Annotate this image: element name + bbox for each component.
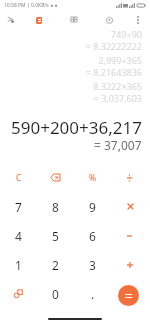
staticText: 1 [15,257,22,273]
button[interactable]: 3 [74,250,111,279]
button[interactable]: 2 [37,250,74,279]
button[interactable]: C [0,163,37,192]
button[interactable]: Scientific mode [1,10,19,28]
button[interactable]: History [30,11,48,29]
staticText: 8.3222×365 [93,80,142,92]
staticText: = 8.21643836 [85,66,142,78]
button[interactable]: 7 [0,192,37,221]
button[interactable]: 6 [74,221,111,250]
button[interactable]: Multiply [111,192,148,221]
staticText: 0 [52,286,59,302]
staticText: = 3,037.603 [93,92,142,104]
staticText: 9 [89,199,96,215]
button[interactable]: 1 [0,250,37,279]
button[interactable]: 8 [37,192,74,221]
button[interactable]: Unit converter [0,279,37,308]
staticText: 5 [52,228,59,244]
button[interactable]: 4 [0,221,37,250]
button[interactable]: % [74,163,111,192]
staticText: = 37,007 [94,137,142,153]
button[interactable]: Currency [100,11,118,29]
button[interactable]: 5 [37,221,74,250]
staticText: 2,999÷365 [98,54,142,66]
button[interactable]: Backspace [37,163,74,192]
staticText: 3 [89,257,96,273]
staticText: . [91,286,95,302]
staticText: 8 [52,199,59,215]
staticText: 749÷90 [111,28,142,40]
staticText: = 8.32222222 [85,40,142,52]
staticText: 7 [15,199,22,215]
staticText: 10:58 PM | 0.0KB/s [4,2,49,9]
button[interactable]: Equals [111,279,148,308]
button[interactable]: . [74,279,111,308]
button[interactable]: Subtract [111,221,148,250]
button[interactable]: Add [111,250,148,279]
button[interactable]: Unit converter [65,11,83,29]
button[interactable]: Divide [111,163,148,192]
staticText: 2 [52,257,59,273]
button[interactable]: 0 [37,279,74,308]
staticText: % [89,172,97,184]
staticText: 4 [15,228,22,244]
button[interactable]: More options [129,11,147,29]
button[interactable]: 9 [74,192,111,221]
staticText: 590+200+36,217 [11,116,142,139]
staticText: C [16,172,22,183]
staticText: 6 [89,228,96,244]
